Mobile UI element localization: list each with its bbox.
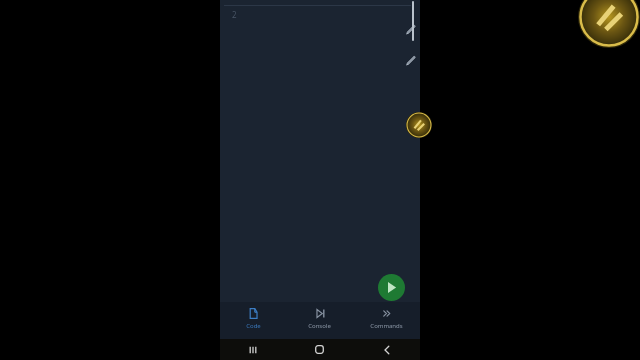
button[interactable]: Home xyxy=(286,339,353,360)
button[interactable]: Back xyxy=(353,339,420,360)
button[interactable]: Edit line xyxy=(400,50,420,70)
button[interactable]: Edit line xyxy=(400,19,420,39)
staticText: 2 xyxy=(232,9,237,20)
button[interactable]: Code xyxy=(220,302,286,339)
button[interactable]: Console xyxy=(286,302,353,339)
staticText: Code xyxy=(246,322,261,330)
button[interactable]: Recents xyxy=(220,339,286,360)
staticText: Console xyxy=(308,322,331,330)
staticText: Commands xyxy=(370,322,403,330)
button[interactable]: Run xyxy=(378,274,405,301)
button[interactable]: Commands xyxy=(353,302,420,339)
